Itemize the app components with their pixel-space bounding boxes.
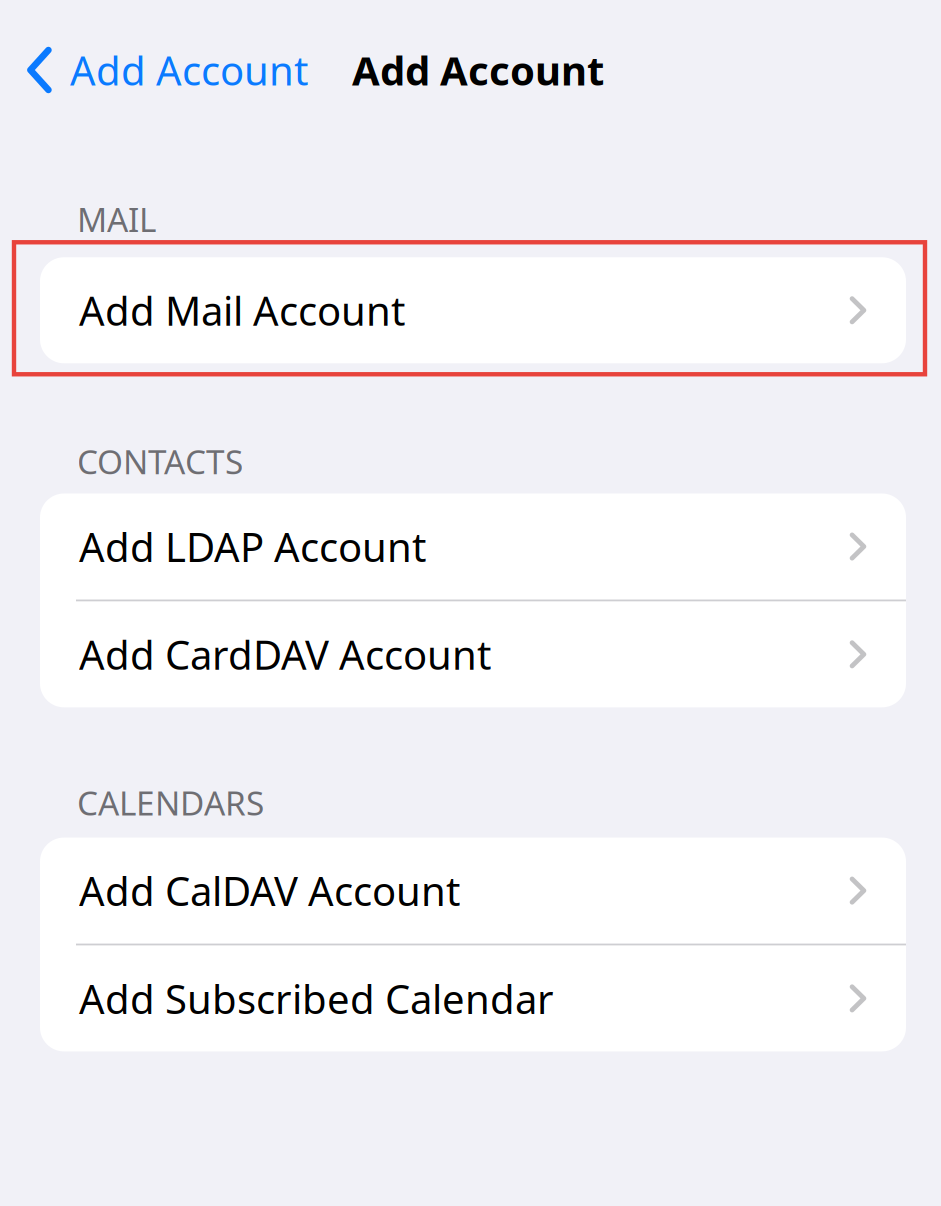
staticText: Add Account — [352, 43, 604, 96]
staticText: Add Account — [70, 43, 308, 96]
staticText: Add Mail Account — [79, 284, 405, 337]
staticText: Add LDAP Account — [79, 520, 426, 573]
button[interactable]: Add Account — [0, 33, 308, 106]
button[interactable]: Add CardDAV Account — [40, 601, 906, 707]
staticText: MAIL — [77, 197, 156, 241]
staticText: Add CalDAV Account — [79, 864, 460, 917]
staticText: CONTACTS — [77, 439, 243, 484]
staticText: Add CardDAV Account — [79, 628, 491, 681]
staticText: CALENDARS — [77, 780, 264, 825]
button[interactable]: Add CalDAV Account — [40, 838, 906, 944]
button[interactable]: Add Mail Account — [40, 257, 906, 363]
staticText: Add Subscribed Calendar — [79, 972, 554, 1025]
button[interactable]: Add Subscribed Calendar — [40, 945, 906, 1051]
button[interactable]: Add LDAP Account — [40, 493, 906, 599]
